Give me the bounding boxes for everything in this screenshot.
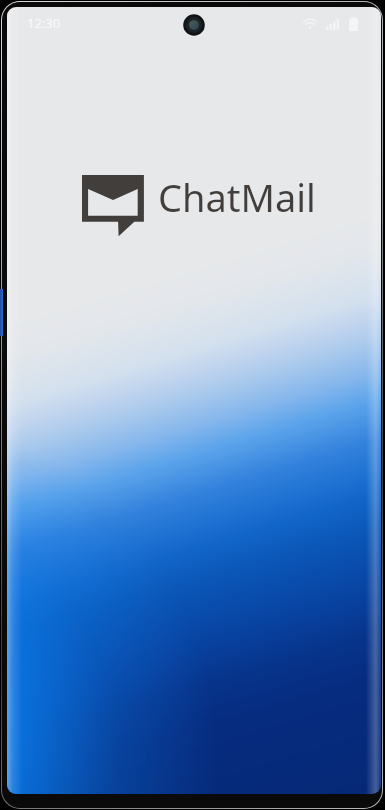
staticText: ChatMail — [158, 171, 316, 223]
staticText: 12:30 — [27, 14, 61, 32]
